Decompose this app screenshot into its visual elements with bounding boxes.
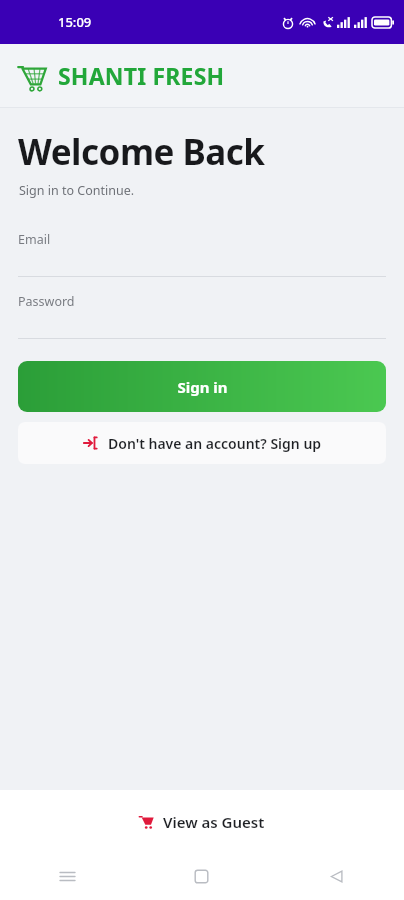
staticText: SHANTI FRESH bbox=[58, 60, 225, 91]
button[interactable]: View as Guest bbox=[0, 790, 404, 853]
staticText: 15:09 bbox=[58, 13, 92, 31]
staticText: Don't have an account? Sign up bbox=[108, 434, 322, 453]
other: Recent apps bbox=[59, 868, 76, 885]
other: Back bbox=[329, 869, 344, 884]
button[interactable]: Back bbox=[269, 853, 404, 900]
button[interactable]: Email bbox=[18, 223, 386, 277]
staticText: Email bbox=[18, 231, 51, 248]
button[interactable]: Password bbox=[18, 285, 386, 339]
other: Sign up bbox=[83, 436, 97, 450]
staticText: Password bbox=[18, 293, 75, 310]
button[interactable]: Recent apps bbox=[0, 853, 134, 900]
staticText: Sign in to Continue. bbox=[19, 182, 135, 199]
other: Home bbox=[194, 869, 209, 884]
staticText: Sign in bbox=[177, 377, 228, 397]
button[interactable]: Sign up bbox=[18, 422, 386, 464]
staticText: Welcome Back bbox=[18, 128, 265, 176]
staticText: View as Guest bbox=[163, 812, 265, 832]
button[interactable]: Home bbox=[134, 853, 269, 900]
button[interactable]: Sign in bbox=[18, 361, 386, 412]
